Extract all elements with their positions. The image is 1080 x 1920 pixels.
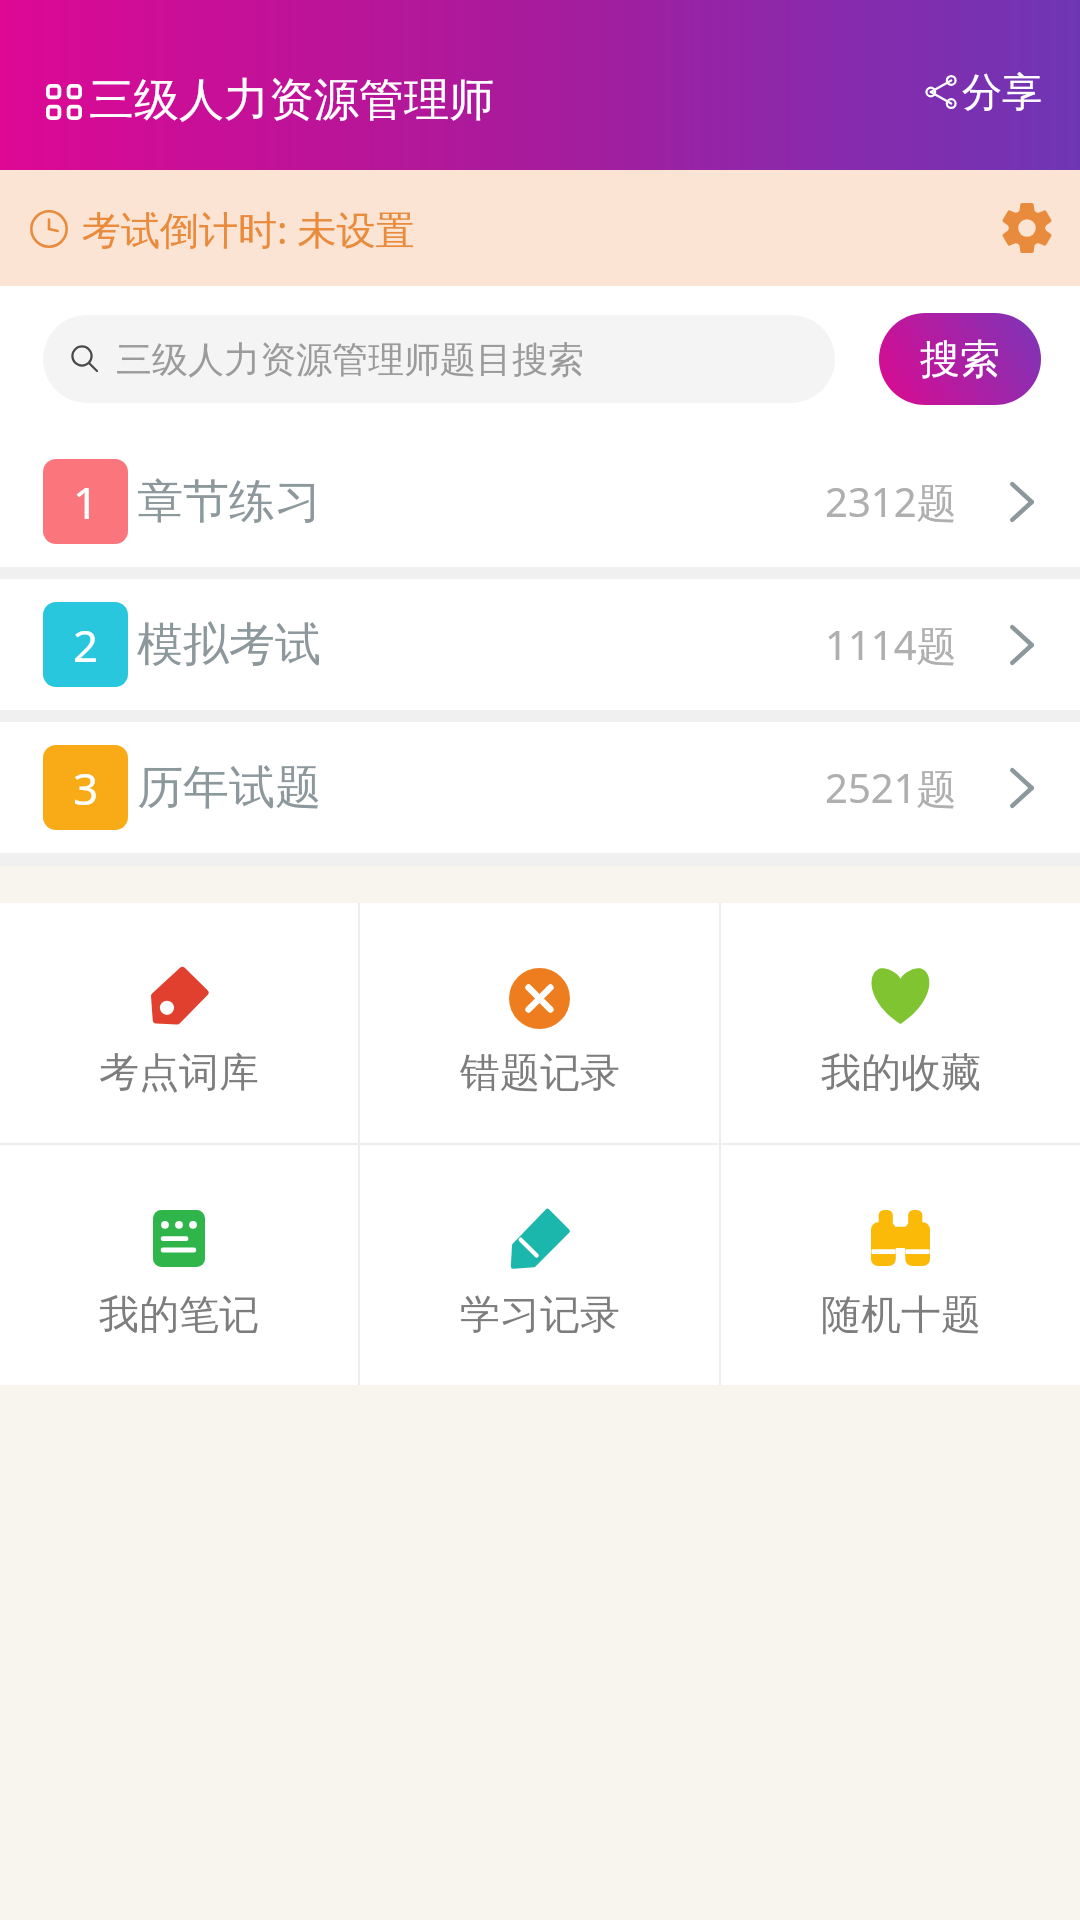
staticText: 随机十题 [821, 1289, 981, 1339]
button[interactable]: 搜索 [879, 313, 1041, 405]
button[interactable]: 3 [0, 722, 1080, 853]
staticText: 2 [73, 615, 99, 675]
staticText: 考点词库 [99, 1047, 259, 1097]
staticText: 三级人力资源管理师题目搜索 [116, 337, 584, 382]
staticText: 错题记录 [460, 1047, 620, 1097]
button[interactable]: 学习记录 [360, 1145, 719, 1385]
staticText: 2312题 [825, 474, 957, 529]
button[interactable]: 我的收藏 [721, 903, 1080, 1143]
staticText: 2521题 [825, 760, 957, 815]
staticText: 1114题 [825, 617, 957, 672]
staticText: 分享 [962, 67, 1042, 117]
staticText: 模拟考试 [137, 616, 321, 674]
button[interactable]: 分享 [922, 61, 1046, 123]
button[interactable]: 三级人力资源管理师题目搜索 [43, 315, 835, 403]
staticText: 三级人力资源管理师 [89, 72, 494, 129]
button[interactable]: 考点词库 [0, 903, 358, 1143]
staticText: 3 [73, 758, 99, 818]
staticText: 历年试题 [137, 759, 321, 817]
staticText: 我的笔记 [99, 1289, 259, 1339]
button[interactable]: 错题记录 [360, 903, 719, 1143]
button[interactable]: Settings [998, 197, 1056, 259]
staticText: 学习记录 [460, 1289, 620, 1339]
staticText: 章节练习 [137, 473, 321, 531]
staticText: 我的收藏 [821, 1047, 981, 1097]
button[interactable]: 我的笔记 [0, 1145, 358, 1385]
staticText: 1 [73, 472, 99, 532]
button[interactable]: 2 [0, 579, 1080, 710]
staticText: 考试倒计时: 未设置 [82, 202, 415, 255]
staticText: 搜索 [920, 334, 1000, 384]
button[interactable]: 随机十题 [721, 1145, 1080, 1385]
button[interactable]: 1 [0, 436, 1080, 567]
